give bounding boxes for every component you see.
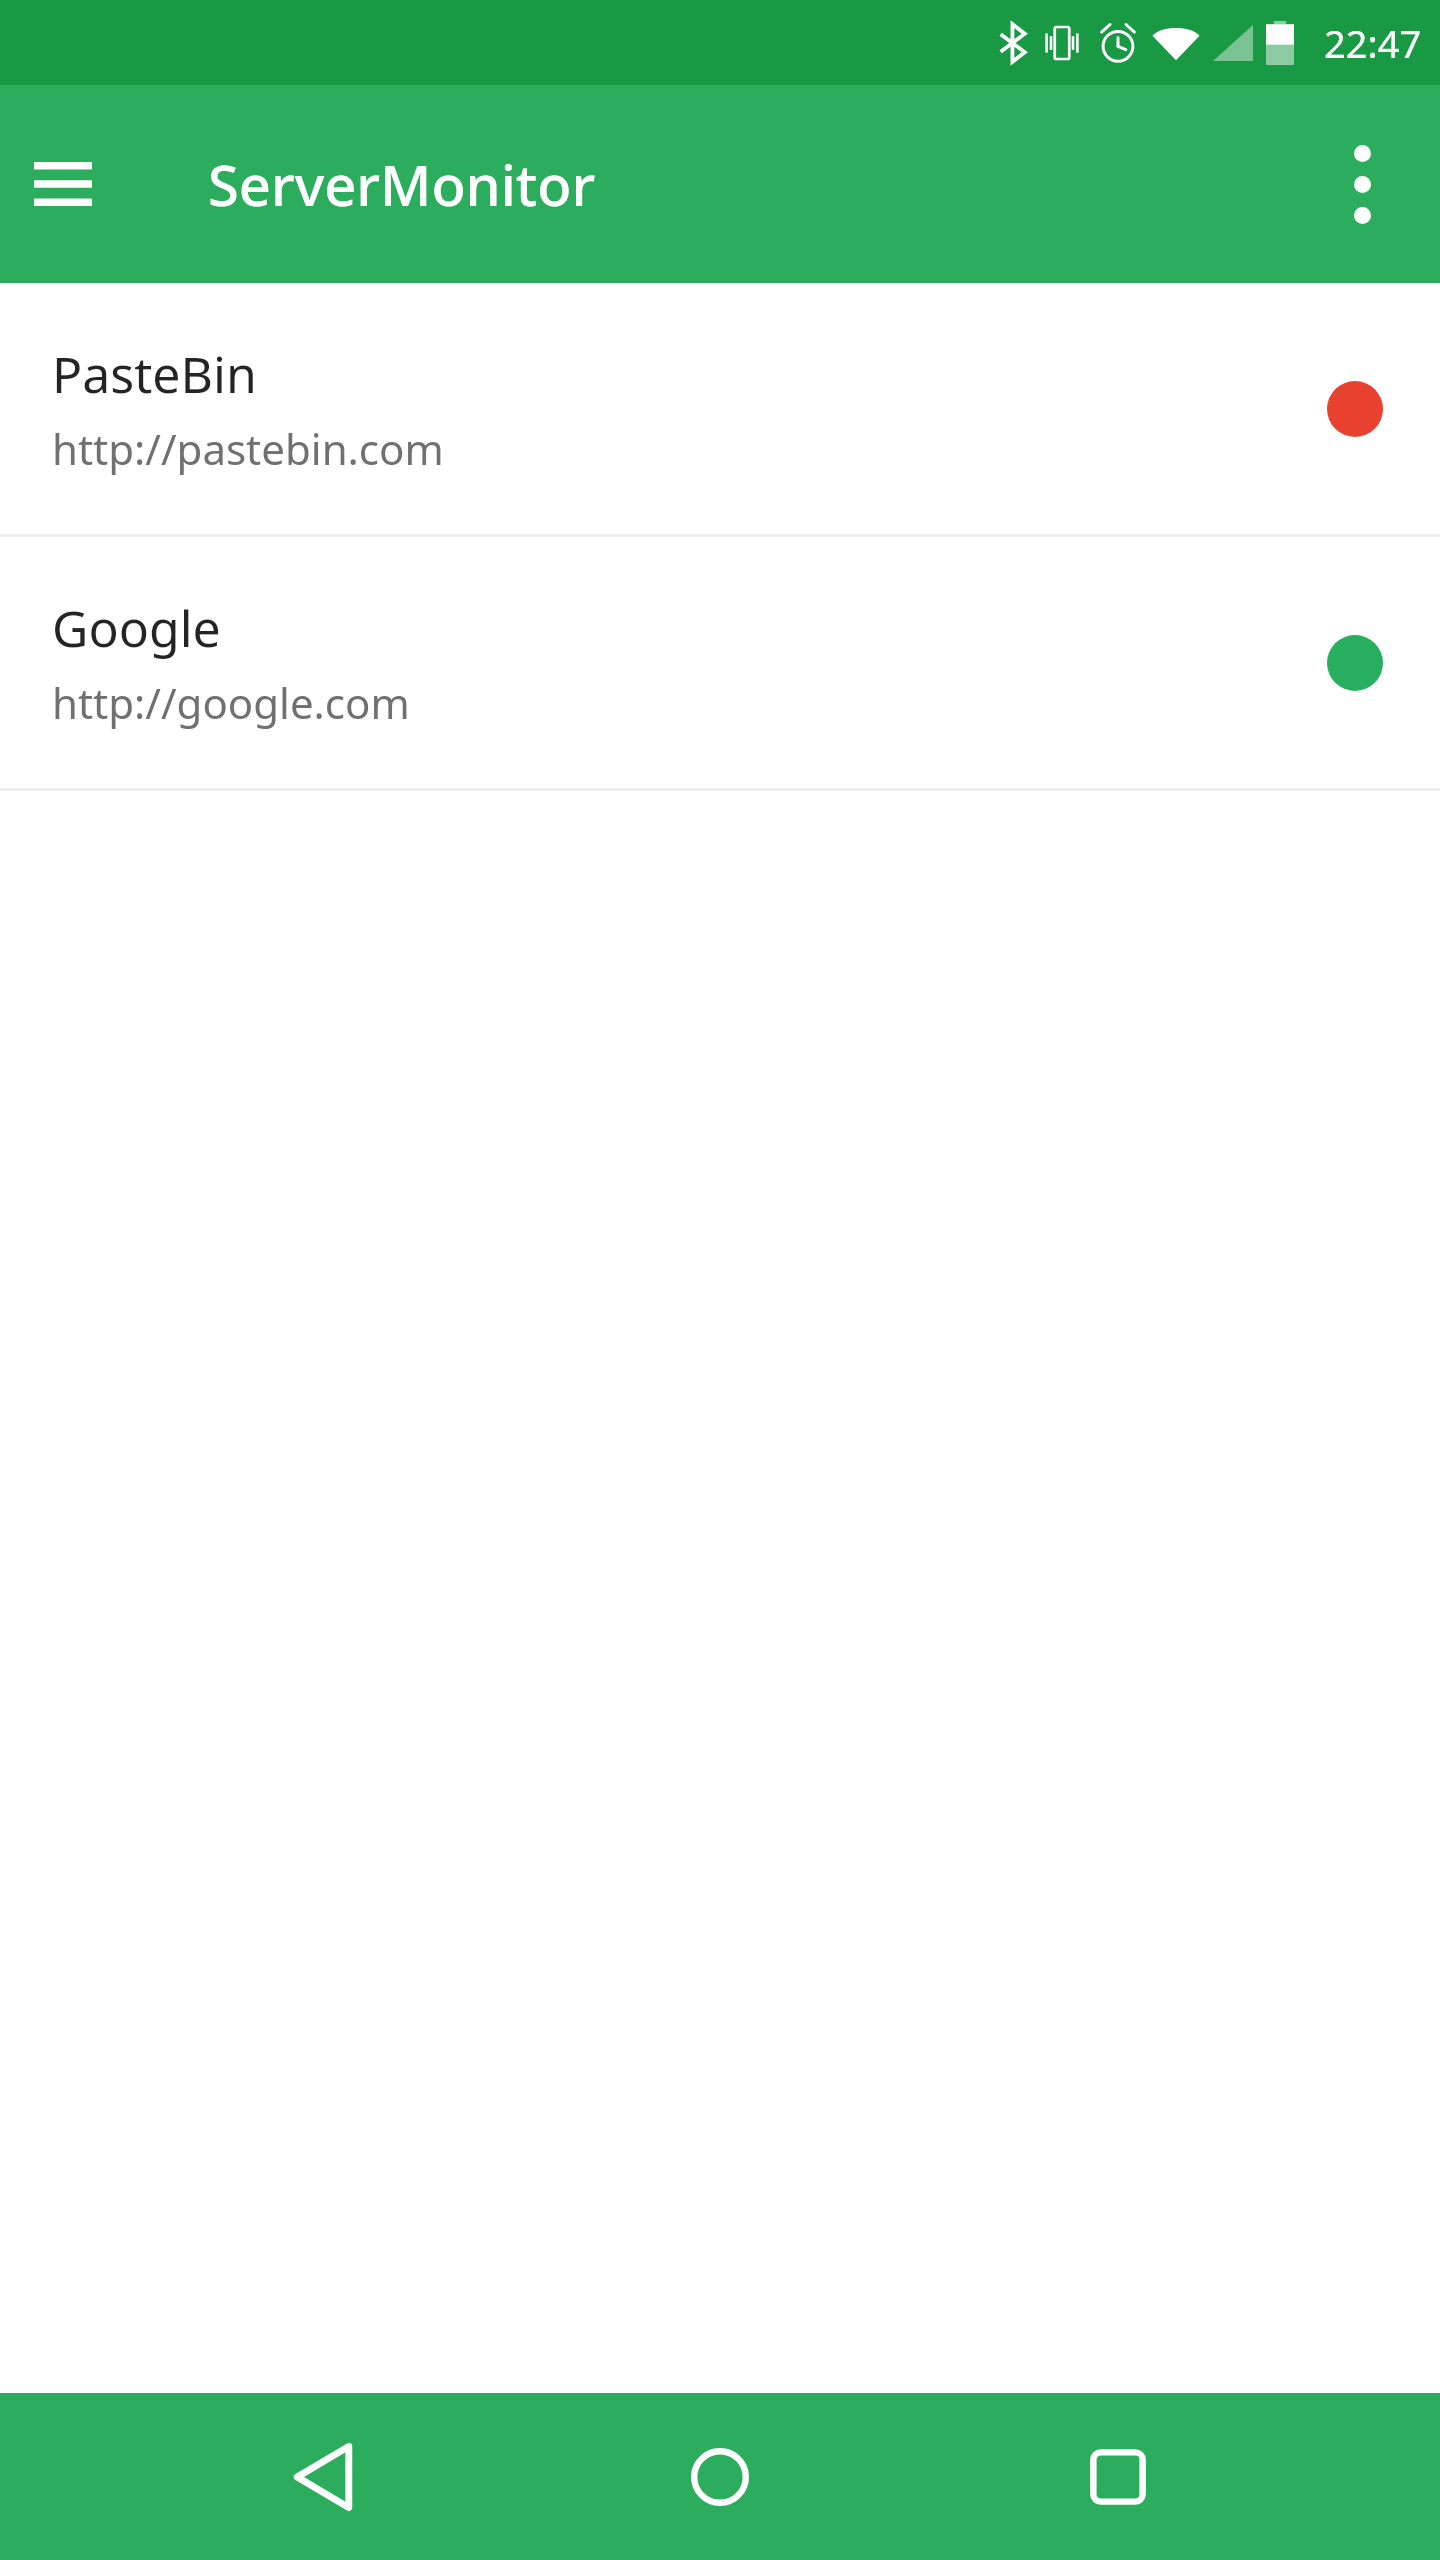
staticText: ServerMonitor [208,146,596,222]
button[interactable]: Back [248,2402,398,2552]
staticText: PasteBin [52,340,257,408]
staticText: http://pastebin.com [52,420,444,477]
staticText: 22:47 [1324,17,1422,69]
button[interactable]: Google [0,537,1440,788]
button[interactable]: Open navigation drawer [11,132,115,236]
button[interactable]: PasteBin [0,283,1440,534]
button[interactable]: Home [645,2402,795,2552]
staticText: Google [52,594,221,662]
button[interactable]: Recent apps [1043,2402,1193,2552]
button[interactable]: More options [1310,132,1414,236]
staticText: http://google.com [52,674,410,731]
